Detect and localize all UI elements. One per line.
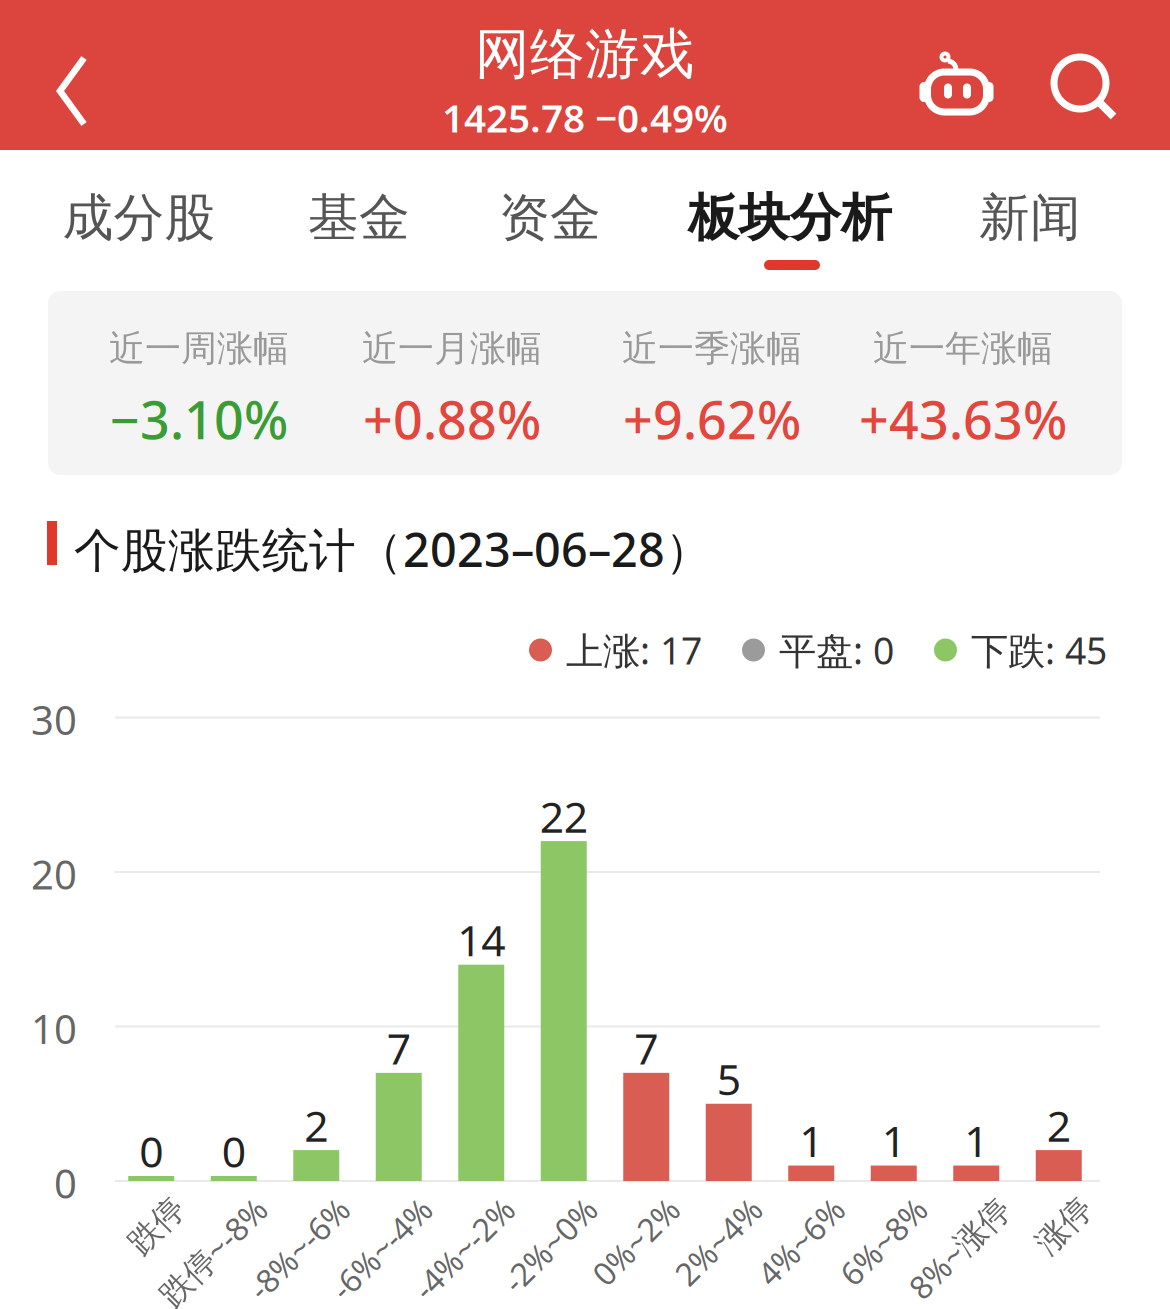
staticText: 下跌: 45 [971,625,1107,675]
staticText: 网络游戏 [475,21,695,88]
staticText: 22 [540,788,588,844]
staticText: 8%~涨停 [912,1267,1039,1309]
staticText: 7 [387,1019,411,1076]
button[interactable]: Assistant [911,47,1001,137]
staticText: 近一月涨幅 [362,326,542,371]
staticText: 上涨: 17 [566,625,702,675]
staticText: +9.62% [623,385,801,454]
button[interactable]: 板块分析 [688,158,892,278]
staticText: 板块分析 [688,187,892,249]
staticText: 0 [139,1123,163,1179]
staticText: 平盘: 0 [779,625,894,675]
staticText: 5 [717,1050,741,1107]
staticText: -8%~-6% [251,1267,379,1309]
button[interactable]: 基金 [308,158,410,278]
staticText: 资金 [499,187,601,249]
staticText: 近一周涨幅 [109,326,289,371]
staticText: 1 [882,1112,906,1169]
staticText: 2%~4% [684,1267,792,1309]
staticText: 新闻 [979,187,1081,249]
staticText: 0 [54,1156,77,1209]
staticText: 个股涨跌统计（2023–06–28） [74,518,712,580]
staticText: 14 [457,911,505,968]
button[interactable]: 成分股 [62,158,215,278]
button[interactable]: Search [1050,53,1120,123]
button[interactable]: 资金 [499,158,601,278]
staticText: 1425.78 −0.49% [442,92,728,143]
staticText: −3.10% [110,385,288,454]
staticText: 6%~8% [849,1267,957,1309]
staticText: 10 [31,1002,77,1055]
staticText: 7 [634,1019,658,1076]
staticText: -6%~-4% [334,1267,462,1309]
staticText: 近一年涨幅 [873,326,1053,371]
staticText: 0 [222,1123,246,1179]
staticText: 基金 [308,187,410,249]
staticText: -2%~0% [509,1267,627,1309]
staticText: 跌停 [150,1268,214,1308]
staticText: 1 [799,1112,823,1169]
staticText: +0.88% [363,385,541,454]
staticText: 2 [304,1097,328,1153]
staticText: 成分股 [62,187,215,249]
staticText: 4%~6% [766,1267,874,1309]
staticText: 2 [1047,1097,1071,1153]
staticText: 近一季涨幅 [622,326,802,371]
staticText: -4%~-2% [416,1267,544,1309]
staticText: 0%~2% [601,1267,709,1309]
staticText: 跌停~-8% [160,1267,297,1309]
button[interactable]: 新闻 [979,158,1081,278]
staticText: 30 [31,693,77,746]
staticText: +43.63% [859,385,1067,454]
staticText: 1 [964,1112,988,1169]
staticText: 20 [31,847,77,900]
button[interactable]: Back [30,38,114,144]
